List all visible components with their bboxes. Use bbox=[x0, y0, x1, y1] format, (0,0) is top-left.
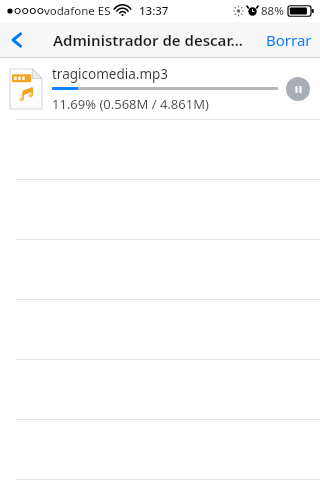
staticText: Administrador de descar... bbox=[53, 30, 243, 50]
staticText: 13:37 bbox=[139, 3, 169, 19]
button[interactable] bbox=[0, 360, 320, 420]
staticText: Borrar bbox=[266, 30, 312, 50]
button[interactable] bbox=[0, 240, 320, 300]
staticText: tragicomedia.mp3 bbox=[52, 65, 169, 83]
button[interactable]: Pausar bbox=[286, 77, 310, 101]
button[interactable] bbox=[0, 300, 320, 360]
button[interactable] bbox=[0, 420, 320, 480]
staticText: vodafone ES bbox=[44, 3, 111, 19]
button[interactable] bbox=[0, 180, 320, 240]
button[interactable]: Atrás bbox=[0, 22, 34, 58]
button[interactable] bbox=[0, 120, 320, 180]
button[interactable]: Borrar bbox=[258, 22, 320, 58]
staticText: 88% bbox=[261, 3, 284, 19]
button[interactable]: tragicomedia.mp3 bbox=[0, 58, 320, 120]
staticText: 11.69% (0.568M / 4.861M) bbox=[52, 95, 209, 113]
